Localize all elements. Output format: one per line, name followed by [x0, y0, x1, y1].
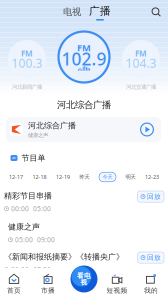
staticText: 09:30 07:30: [11, 265, 51, 274]
button[interactable]: 健康之声: [0, 217, 168, 245]
button[interactable]: 市播: [31, 273, 65, 295]
staticText: 视: [80, 278, 87, 286]
button[interactable]: 河北综合广播: [6, 117, 161, 142]
staticText: 104.3: [125, 55, 156, 71]
staticText: 回放: [147, 192, 161, 201]
button[interactable]: 精彩节目串播: [0, 186, 168, 214]
staticText: 电视: [63, 6, 81, 18]
staticText: 明天: [125, 174, 135, 180]
button[interactable]: 电视: [61, 4, 83, 20]
button[interactable]: 短视频: [100, 273, 134, 295]
button[interactable]: 12-23: [145, 172, 159, 182]
button[interactable]: 首页: [0, 273, 31, 295]
staticText: 00:00 05:00: [11, 204, 51, 213]
button[interactable]: 节目单: [8, 152, 48, 164]
button[interactable]: 12-17: [9, 172, 23, 182]
button[interactable]: Search: [150, 6, 162, 18]
staticText: FM: [21, 48, 33, 59]
staticText: FM: [135, 48, 147, 59]
button[interactable]: 广播: [88, 4, 112, 21]
button[interactable]: 12-19: [56, 172, 70, 182]
staticText: 市播: [41, 286, 55, 295]
staticText: 健康之声: [8, 222, 40, 232]
staticText: 河北综合广播: [28, 121, 76, 130]
button[interactable]: 12-18: [32, 172, 46, 182]
button[interactable]: FM: [122, 40, 160, 78]
staticText: 《新闻和报纸摘要》《转播央广》: [4, 252, 124, 262]
staticText: 我的: [144, 286, 158, 295]
staticText: 05:00 09:00: [15, 235, 55, 244]
button[interactable]: 明天: [125, 172, 135, 182]
staticText: 12-18: [32, 173, 46, 181]
staticText: 回放: [147, 253, 161, 262]
staticText: 河北交通广播: [126, 84, 156, 90]
staticText: 节目单: [21, 153, 45, 163]
staticText: 河北综合广播: [57, 99, 111, 111]
staticText: 12-17: [9, 173, 23, 181]
button[interactable]: 我的: [134, 273, 168, 295]
staticText: 河北新闻广播: [12, 84, 42, 90]
staticText: 102.9: [61, 47, 106, 70]
staticText: 广播: [89, 4, 111, 17]
staticText: 精彩节目串播: [4, 191, 52, 201]
staticText: 昨天: [79, 174, 89, 180]
staticText: 首页: [7, 286, 21, 295]
button[interactable]: 《新闻和报纸摘要》《转播央广》: [0, 247, 168, 275]
staticText: 12-23: [145, 173, 159, 181]
staticText: 看电: [77, 272, 91, 280]
button[interactable]: 昨天: [79, 172, 89, 182]
staticText: 100.3: [11, 55, 42, 71]
button[interactable]: FM: [8, 40, 46, 78]
staticText: FM: [77, 41, 91, 54]
button[interactable]: 今天: [99, 172, 116, 182]
staticText: 健康之声: [28, 132, 48, 138]
staticText: 今天: [102, 174, 112, 180]
staticText: 12-19: [56, 173, 70, 181]
staticText: 短视频: [106, 286, 127, 295]
button[interactable]: FM: [57, 30, 111, 84]
button[interactable]: 看电视: [70, 265, 97, 292]
